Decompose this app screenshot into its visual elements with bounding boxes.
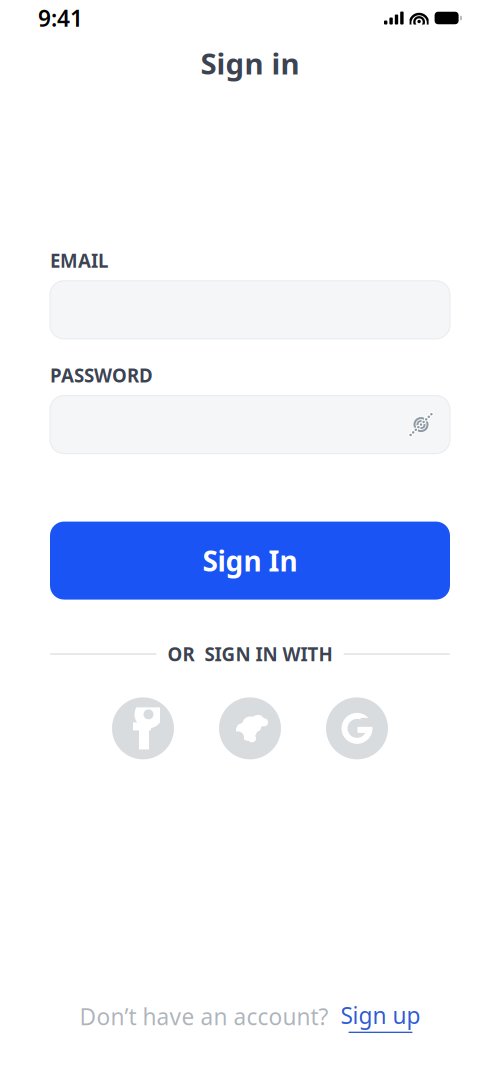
button[interactable]: Sign in with Twitter — [219, 697, 281, 759]
staticText: PASSWORD — [50, 363, 153, 388]
staticText: Don’t have an account? — [79, 1001, 328, 1032]
staticText: 9:41 — [38, 3, 83, 33]
button[interactable]: Sign in with Google — [326, 697, 388, 759]
button[interactable]: Don’t have an account? — [79, 1000, 420, 1033]
staticText: OR SIGN IN WITH — [167, 642, 332, 666]
button[interactable]: Sign in with Facebook — [112, 697, 174, 759]
staticText: Sign in — [200, 43, 299, 82]
button[interactable]: PASSWORD — [50, 396, 450, 454]
staticText: Sign In — [202, 542, 297, 579]
staticText: EMAIL — [50, 248, 108, 273]
staticText: Sign up — [340, 1000, 420, 1030]
button[interactable]: Sign In — [50, 522, 450, 600]
